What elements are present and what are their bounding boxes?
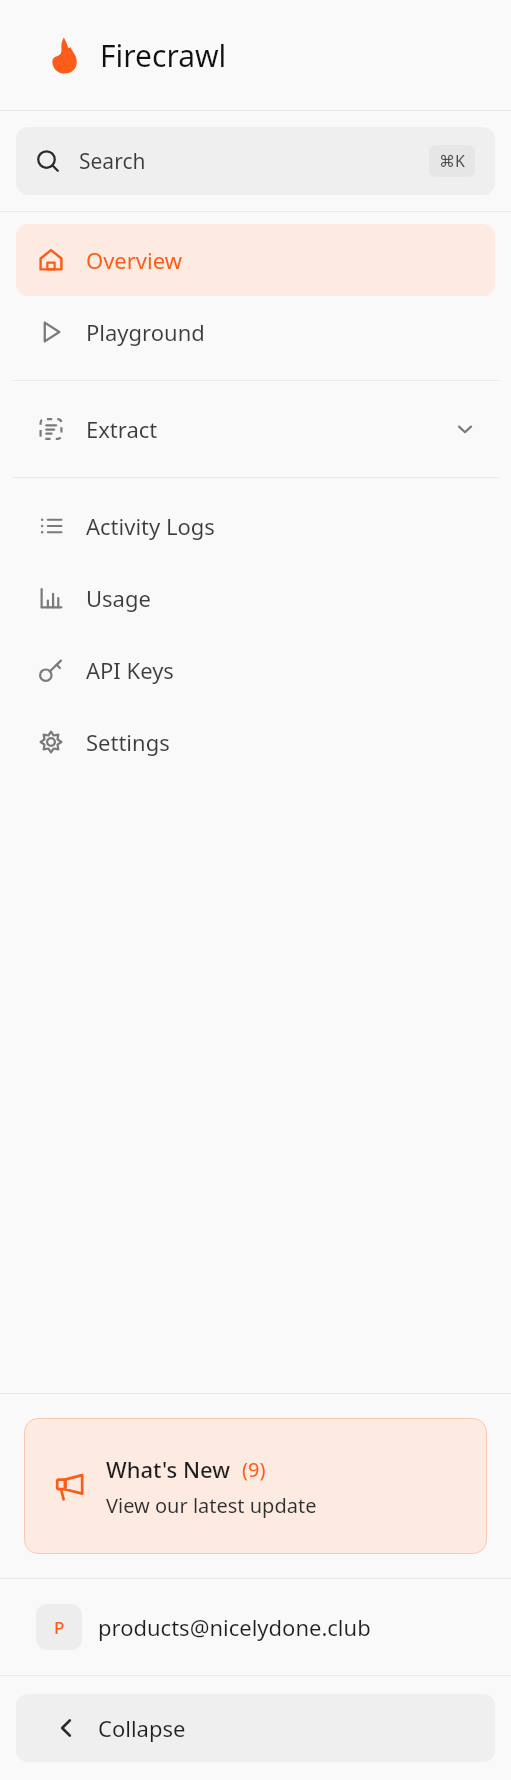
staticText: ⌘K — [439, 150, 465, 172]
staticText: Collapse — [98, 1713, 186, 1743]
staticText: Search — [79, 147, 146, 176]
button[interactable]: P — [0, 1579, 511, 1675]
button[interactable]: What's New — [24, 1418, 487, 1554]
staticText: What's New — [106, 1454, 230, 1484]
button[interactable]: Overview — [16, 224, 495, 296]
staticText: Activity Logs — [86, 511, 215, 541]
button[interactable]: Firecrawl — [0, 0, 511, 110]
staticText: View our latest update — [106, 1492, 317, 1519]
staticText: P — [54, 1616, 65, 1639]
staticText: Overview — [86, 245, 182, 275]
button[interactable]: Extract — [16, 393, 495, 465]
staticText: Usage — [86, 583, 151, 613]
staticText: Settings — [86, 727, 170, 757]
button[interactable]: Search — [16, 127, 495, 195]
button[interactable]: Usage — [16, 562, 495, 634]
button[interactable]: Playground — [16, 296, 495, 368]
staticText: Firecrawl — [100, 35, 227, 76]
staticText: Playground — [86, 317, 205, 347]
button[interactable]: API Keys — [16, 634, 495, 706]
staticText: products@nicelydone.club — [98, 1612, 371, 1642]
button[interactable]: Settings — [16, 706, 495, 778]
staticText: Extract — [86, 414, 158, 444]
staticText: (9) — [242, 1456, 266, 1483]
staticText: API Keys — [86, 655, 174, 685]
button[interactable]: Activity Logs — [16, 490, 495, 562]
button[interactable]: Collapse — [16, 1694, 495, 1762]
